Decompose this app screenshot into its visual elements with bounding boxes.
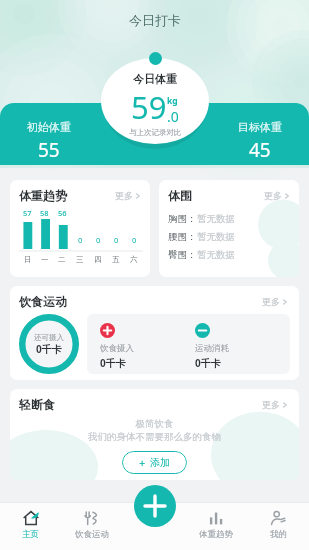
staticText: 三 (76, 255, 84, 264)
staticText: 0 (96, 235, 101, 245)
button[interactable]: 更多 (260, 397, 290, 412)
staticText: 腰围： (168, 231, 197, 243)
staticText: 0千卡 (195, 356, 221, 370)
staticText: 暂无数据 (197, 231, 235, 243)
staticText: 目标体重 (238, 120, 282, 134)
staticText: 58 (40, 208, 49, 218)
button[interactable]: 运动消耗 (195, 323, 210, 338)
staticText: 一 (41, 255, 49, 264)
button[interactable]: 体围 (159, 180, 299, 277)
button[interactable]: 饮食摄入 (100, 323, 115, 338)
staticText: .0 (167, 107, 179, 126)
staticText: 我的 (270, 529, 287, 540)
staticText: 今日体重 (133, 72, 177, 86)
staticText: 二 (58, 255, 66, 264)
staticText: 日 (24, 255, 32, 264)
staticText: 59 (131, 86, 167, 128)
staticText: 饮食运动 (19, 294, 67, 309)
button[interactable]: 体重趋势 (185, 502, 247, 550)
staticText: 添加 (150, 456, 170, 469)
staticText: 运动消耗 (195, 343, 229, 354)
staticText: 轻断食 (19, 397, 55, 412)
staticText: 暂无数据 (197, 213, 235, 225)
button[interactable]: Add record (134, 485, 176, 527)
button[interactable]: 饮食运动 (10, 286, 299, 380)
staticText: 更多 (264, 190, 282, 201)
staticText: 暂无数据 (197, 249, 235, 261)
staticText: 体重趋势 (199, 529, 233, 540)
button[interactable]: + (122, 451, 187, 474)
staticText: 0千卡 (100, 356, 126, 370)
staticText: 还可摄入 (34, 333, 64, 342)
staticText: 五 (112, 255, 120, 264)
staticText: 胸围： (168, 213, 197, 225)
button[interactable]: 饮食运动 (61, 502, 123, 550)
staticText: 0 (132, 235, 137, 245)
button[interactable]: 我的 (247, 502, 309, 550)
button[interactable]: 主页 (0, 502, 61, 550)
staticText: + (139, 455, 146, 470)
staticText: 六 (130, 255, 138, 264)
staticText: 体重趋势 (19, 188, 67, 203)
button[interactable]: 体重趋势 (10, 180, 150, 277)
staticText: kg (167, 95, 178, 107)
staticText: 更多 (262, 399, 280, 410)
staticText: 0 (114, 235, 119, 245)
staticText: 体围 (168, 188, 192, 203)
staticText: 55 (38, 137, 60, 163)
staticText: 我们的身体不需要那么多的食物 (19, 431, 290, 443)
staticText: 饮食摄入 (100, 343, 134, 354)
staticText: 极简饮食 (19, 418, 290, 430)
staticText: 四 (94, 255, 102, 264)
staticText: 饮食运动 (75, 529, 109, 540)
button[interactable]: 更多 (262, 188, 292, 203)
staticText: 57 (23, 208, 32, 218)
button[interactable]: 轻断食 (10, 389, 299, 480)
staticText: 0 (78, 235, 83, 245)
staticText: 更多 (115, 190, 133, 201)
staticText: 更多 (262, 296, 280, 307)
staticText: 初始体重 (27, 120, 71, 134)
staticText: 45 (249, 137, 271, 163)
staticText: 主页 (22, 529, 39, 540)
button[interactable]: 更多 (113, 188, 143, 203)
button[interactable]: 更多 (260, 294, 290, 309)
staticText: 56 (58, 208, 67, 218)
staticText: 今日打卡 (129, 12, 181, 28)
staticText: 与上次记录对比 (129, 128, 182, 137)
staticText: 0千卡 (36, 342, 62, 356)
staticText: 臀围： (168, 249, 197, 261)
